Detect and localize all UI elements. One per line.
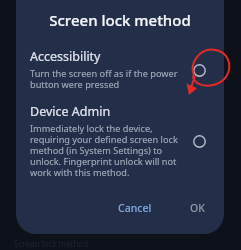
button[interactable]: Cancel	[109, 196, 161, 220]
staticText: Immediately lock the device, requiring y…	[30, 122, 178, 179]
button[interactable]: Accessibility	[16, 48, 224, 91]
button[interactable]: OK	[181, 196, 214, 220]
staticText: Cancel	[118, 201, 152, 215]
button[interactable]: Select Accessibility	[182, 53, 216, 87]
staticText: Accessibility	[30, 48, 101, 65]
staticText: Device Admin	[30, 103, 111, 120]
staticText: Screen lock method	[16, 10, 224, 30]
button[interactable]: Device Admin	[16, 103, 224, 179]
staticText: Turn the screen off as if the power butt…	[30, 67, 178, 91]
button[interactable]: Select Device Admin	[182, 124, 216, 158]
staticText: Screen lock method	[14, 238, 89, 249]
staticText: OK	[190, 201, 205, 215]
